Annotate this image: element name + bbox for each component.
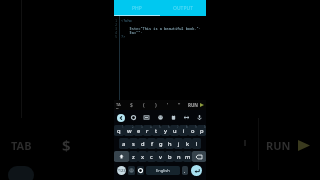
button[interactable]: y xyxy=(161,125,170,136)
staticText: 4 xyxy=(150,125,152,129)
staticText: $ xyxy=(62,135,71,155)
button[interactable]: t xyxy=(152,125,161,136)
staticText: OUTPUT xyxy=(173,5,193,12)
staticText: 1 xyxy=(122,125,124,129)
staticText: k xyxy=(186,140,190,148)
staticText: r xyxy=(146,127,149,135)
staticText: b xyxy=(168,153,172,161)
staticText: PHP xyxy=(132,5,142,12)
staticText: f xyxy=(151,140,153,148)
button[interactable]: OUTPUT xyxy=(160,0,206,16)
staticText: o xyxy=(191,127,195,135)
button[interactable]: $ xyxy=(128,102,135,109)
button[interactable]: n xyxy=(174,151,183,162)
staticText: d xyxy=(141,140,145,148)
staticText: j xyxy=(178,140,180,148)
button[interactable]: o xyxy=(188,125,197,136)
staticText: ?123 xyxy=(117,168,126,173)
button[interactable]: g xyxy=(156,138,165,149)
staticText: ) xyxy=(155,102,157,109)
staticText: 0 xyxy=(204,125,206,129)
staticText: English xyxy=(156,168,170,173)
button[interactable]: p xyxy=(197,125,206,136)
button[interactable]: ?123 xyxy=(117,166,126,175)
staticText: n xyxy=(177,153,181,161)
button[interactable]: Resize keyboard xyxy=(182,113,191,122)
button[interactable]: Stickers xyxy=(156,113,165,122)
staticText: ?> xyxy=(121,34,126,38)
button[interactable]: z xyxy=(129,151,138,162)
staticText: $str="This is a beautiful book."; xyxy=(121,26,201,30)
button[interactable]: TAB xyxy=(116,102,123,109)
staticText: ' xyxy=(167,102,169,109)
button[interactable]: f xyxy=(147,138,156,149)
button[interactable]: s xyxy=(129,138,138,149)
button[interactable]: PHP xyxy=(114,0,160,16)
button[interactable]: Voice input xyxy=(195,113,204,122)
button[interactable]: Backspace xyxy=(192,151,206,162)
button[interactable]: q xyxy=(114,125,124,136)
staticText: x xyxy=(141,153,145,161)
button[interactable]: j xyxy=(174,138,183,149)
button[interactable]: a xyxy=(119,138,129,149)
staticText: 4 xyxy=(115,30,118,34)
button[interactable]: h xyxy=(165,138,174,149)
button[interactable]: ' xyxy=(164,102,171,109)
staticText: y xyxy=(164,127,167,135)
staticText: . xyxy=(184,168,186,174)
button[interactable]: l xyxy=(192,138,201,149)
button[interactable]: Clipboard xyxy=(169,113,178,122)
staticText: v xyxy=(159,153,162,161)
staticText: 5 xyxy=(159,125,161,129)
button[interactable]: ) xyxy=(152,102,159,109)
button[interactable]: k xyxy=(183,138,192,149)
button[interactable]: x xyxy=(138,151,147,162)
button[interactable]: v xyxy=(156,151,165,162)
staticText: u xyxy=(173,127,177,135)
button[interactable]: Enter xyxy=(191,165,202,176)
staticText: m xyxy=(185,153,191,161)
button[interactable]: u xyxy=(170,125,179,136)
button[interactable]: " xyxy=(176,102,183,109)
staticText: 2 xyxy=(115,22,118,26)
staticText: a xyxy=(122,140,126,148)
button[interactable]: Shift xyxy=(114,151,129,162)
staticText: z xyxy=(132,153,135,161)
button[interactable]: w xyxy=(124,125,134,136)
staticText: 6 xyxy=(168,125,170,129)
button[interactable]: Back xyxy=(116,113,125,122)
button[interactable]: RUN xyxy=(188,102,206,108)
staticText: 1 xyxy=(115,18,118,22)
staticText: h xyxy=(168,140,172,148)
staticText: RUN xyxy=(188,102,199,108)
staticText: 3 xyxy=(115,26,118,30)
button[interactable]: d xyxy=(138,138,147,149)
staticText: w xyxy=(127,127,132,135)
button[interactable]: b xyxy=(165,151,174,162)
button[interactable]: GIF xyxy=(142,113,151,122)
staticText: ( xyxy=(143,102,145,109)
staticText: 5 xyxy=(115,34,118,38)
staticText: l xyxy=(196,140,198,148)
button[interactable]: Emoji xyxy=(128,166,135,175)
staticText: c xyxy=(150,153,153,161)
button[interactable]: Settings xyxy=(129,113,138,122)
staticText: $a=""; xyxy=(121,30,143,34)
staticText: 9 xyxy=(195,125,197,129)
staticText: <?php xyxy=(121,18,132,22)
button[interactable]: r xyxy=(143,125,152,136)
staticText: 3 xyxy=(141,125,143,129)
staticText: g xyxy=(159,140,163,148)
button[interactable]: English xyxy=(146,166,180,175)
button[interactable]: i xyxy=(179,125,188,136)
button[interactable]: e xyxy=(134,125,143,136)
staticText: p xyxy=(200,127,204,135)
button[interactable]: m xyxy=(183,151,192,162)
staticText: TAB xyxy=(11,138,32,153)
button[interactable]: ( xyxy=(140,102,147,109)
button[interactable]: c xyxy=(147,151,156,162)
button[interactable]: Keyboard settings xyxy=(137,166,144,175)
staticText: t xyxy=(155,127,158,135)
staticText: e xyxy=(137,127,141,135)
button[interactable]: . xyxy=(182,166,188,175)
